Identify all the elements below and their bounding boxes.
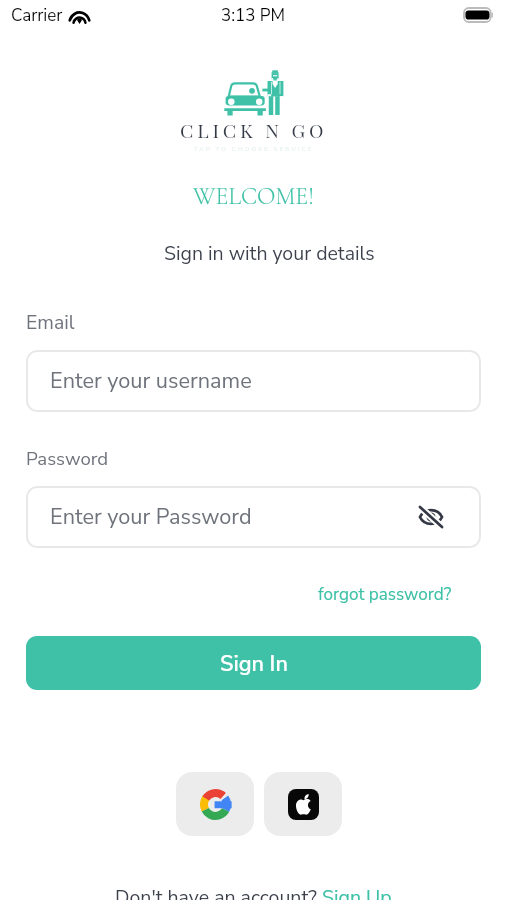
- staticText: Password: [26, 446, 109, 471]
- button[interactable]: forgot password?: [318, 583, 452, 606]
- staticText: Don't have an account?: [115, 884, 322, 900]
- staticText: Sign in with your details: [164, 240, 375, 267]
- staticText: Carrier: [11, 4, 63, 27]
- button[interactable]: Sign In: [26, 636, 481, 690]
- staticText: forgot password?: [318, 583, 452, 606]
- button[interactable]: Enter your Password: [26, 486, 481, 548]
- staticText: Sign Up: [322, 884, 392, 900]
- staticText: Enter your username: [50, 366, 446, 396]
- button[interactable]: Sign in with Google: [176, 772, 254, 836]
- staticText: Enter your Password: [50, 502, 416, 532]
- staticText: CLICK N GO: [180, 117, 328, 143]
- staticText: TAP TO CHOOSE SERVICE: [194, 145, 314, 153]
- staticText: Email: [26, 309, 75, 335]
- staticText: 3:13 PM: [221, 4, 286, 27]
- staticText: WELCOME!: [193, 182, 314, 211]
- button[interactable]: Sign in with Apple: [264, 772, 342, 836]
- button[interactable]: Sign Up: [322, 884, 392, 900]
- button[interactable]: Show password: [416, 502, 446, 532]
- button[interactable]: Enter your username: [26, 350, 481, 412]
- staticText: Sign In: [220, 649, 288, 678]
